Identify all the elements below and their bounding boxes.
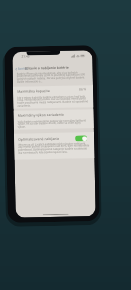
button[interactable]: Optimalizované nabíjanie — [14, 132, 94, 160]
staticText: Maximálna kapacita — [17, 88, 50, 94]
staticText: Maximálny výkon zariadenia — [17, 112, 65, 118]
button[interactable]: Back to Batéria — [15, 66, 28, 71]
staticText: Zdravie a nabíjanie batérie — [25, 65, 70, 70]
button[interactable]: Maximálna kapacita — [13, 85, 93, 109]
staticText: 86 % — [79, 87, 87, 91]
staticText: Batéria iPhonu je navrhnutá tak, aby si … — [17, 70, 88, 84]
staticText: Vaša batéria momentálne podporuje normál… — [18, 118, 89, 129]
button[interactable]: Optimalizované nabíjanie toggle — [75, 135, 87, 142]
staticText: Ide o mieru kapacity batérie vzhľadom na… — [17, 94, 88, 108]
staticText: 21:45 — [21, 54, 30, 59]
staticText: Batéria — [18, 66, 28, 71]
staticText: iPhone sa učí z vašich každodenných návy… — [18, 141, 89, 155]
button[interactable]: Maximálny výkon zariadenia — [13, 109, 94, 130]
staticText: Optimalizované nabíjanie — [18, 136, 60, 142]
